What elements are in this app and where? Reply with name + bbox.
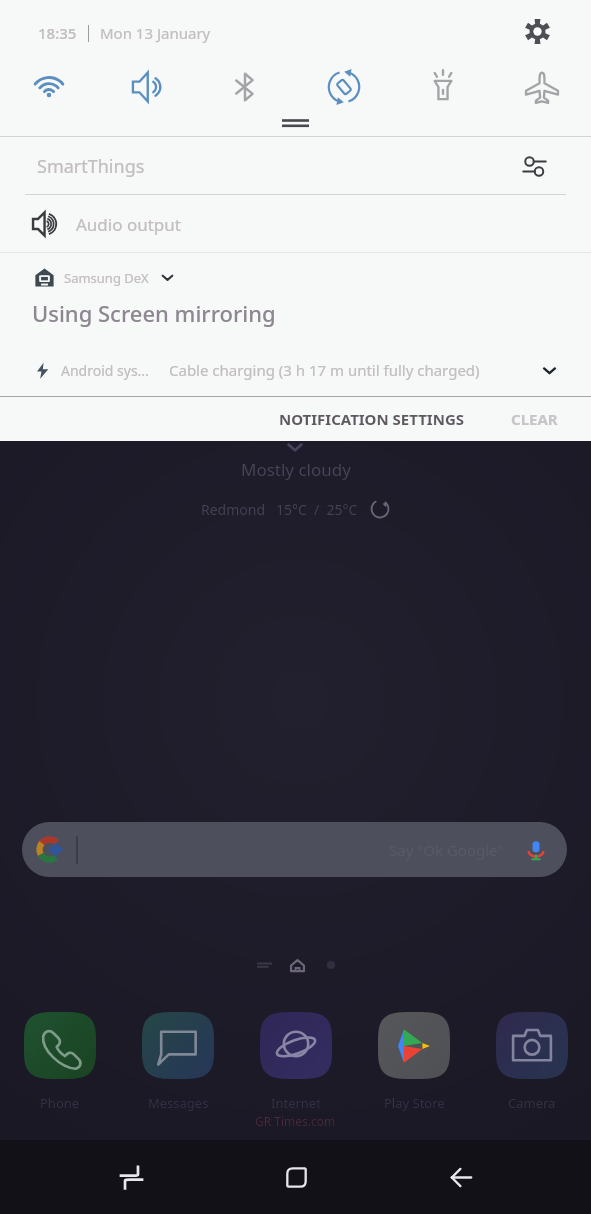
staticText: Using Screen mirroring — [32, 298, 276, 328]
staticText: Mon 13 January — [100, 23, 211, 43]
staticText: Android sys... — [61, 361, 149, 380]
staticText: Messages — [148, 1094, 209, 1112]
button[interactable]: Bluetooth — [196, 63, 294, 111]
button[interactable]: Android sys... — [0, 355, 591, 385]
button[interactable]: Say "Ok Google" — [22, 822, 567, 877]
button[interactable]: Sound — [98, 63, 196, 111]
staticText: 18:35 — [38, 23, 77, 43]
button[interactable]: CLEAR — [507, 399, 562, 439]
button[interactable]: Back — [431, 1140, 491, 1214]
button[interactable]: Samsung DeX — [0, 253, 591, 348]
button[interactable]: Audio output — [0, 195, 591, 252]
button[interactable]: Auto rotate — [294, 63, 393, 111]
button[interactable]: Recents — [101, 1140, 161, 1214]
button[interactable]: Tuner — [516, 148, 552, 184]
staticText: GR Times.com — [255, 1113, 336, 1129]
staticText: Audio output — [76, 213, 181, 236]
button[interactable]: Wi-Fi — [0, 63, 98, 111]
staticText: Mostly cloudy — [241, 458, 351, 481]
button[interactable]: Play Store — [378, 1012, 450, 1079]
button[interactable]: Camera — [496, 1012, 568, 1079]
staticText: Cable charging (3 h 17 m until fully cha… — [169, 360, 480, 380]
staticText: Phone — [40, 1094, 80, 1112]
staticText: Play Store — [384, 1094, 445, 1112]
button[interactable]: Messages — [142, 1012, 214, 1079]
staticText: SmartThings — [37, 154, 145, 179]
staticText: CLEAR — [511, 409, 558, 429]
staticText: Say "Ok Google" — [389, 840, 504, 860]
staticText: Samsung DeX — [64, 269, 149, 287]
button[interactable]: Airplane mode — [492, 63, 591, 111]
button[interactable]: SmartThings — [0, 137, 591, 194]
staticText: Camera — [508, 1094, 556, 1112]
staticText: Redmond 15°C / 25°C — [201, 500, 358, 519]
button[interactable]: Internet — [260, 1012, 332, 1079]
staticText: NOTIFICATION SETTINGS — [279, 409, 465, 429]
button[interactable]: NOTIFICATION SETTINGS — [275, 399, 469, 439]
staticText: Internet — [271, 1094, 321, 1112]
button[interactable]: Home — [266, 1140, 326, 1214]
button[interactable]: Phone — [24, 1012, 96, 1079]
button[interactable]: Settings — [517, 11, 557, 51]
button[interactable]: Flashlight — [393, 63, 492, 111]
